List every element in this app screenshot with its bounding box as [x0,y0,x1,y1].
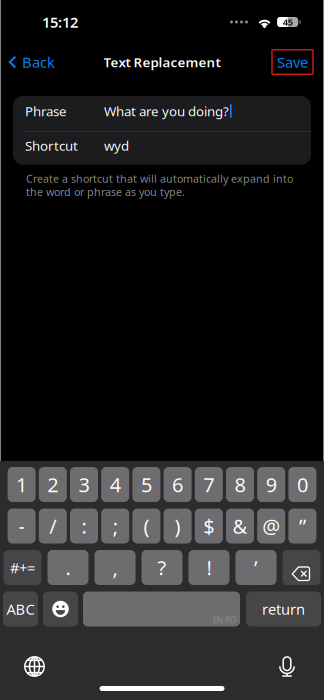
staticText: ” [299,513,306,539]
button[interactable]: 0 [288,467,316,502]
staticText: / [49,513,56,539]
staticText: Back [22,52,55,72]
staticText: #+= [10,558,35,577]
button[interactable]: , [94,550,135,585]
staticText: 9 [266,471,277,498]
button[interactable]: 1 [8,467,36,502]
button[interactable]: 7 [195,467,223,502]
staticText: ) [175,513,181,539]
staticText: return [262,599,305,619]
staticText: 7 [203,471,214,498]
button[interactable]: ABC [3,591,38,626]
button[interactable]: ’ [235,550,276,585]
button[interactable]: Save [272,50,313,74]
staticText: ; [113,513,118,539]
staticText: 1 [16,471,27,498]
button[interactable]: @ [257,508,285,543]
staticText: ! [206,554,211,581]
button[interactable]: 4 [101,467,129,502]
staticText: 4 [110,471,121,498]
button[interactable]: Next keyboard [14,650,55,683]
button[interactable]: & [226,508,254,543]
button[interactable]: 2 [39,467,67,502]
button[interactable]: / [39,508,67,543]
staticText: - [19,513,25,539]
button[interactable]: 3 [70,467,98,502]
staticText: Shortcut [25,137,78,154]
staticText: , [112,554,117,581]
staticText: 2 [47,471,58,498]
staticText: : [81,513,86,539]
staticText: 8 [234,471,245,498]
staticText: @ [262,513,280,539]
button[interactable]: space [83,591,240,626]
button[interactable]: $ [195,508,223,543]
staticText: 45 [283,16,293,28]
staticText: ABC [6,599,34,619]
button[interactable]: . [47,550,88,585]
button[interactable]: return [246,591,321,626]
staticText: $ [203,513,214,539]
button[interactable]: Dictation [267,649,307,683]
button[interactable]: 6 [164,467,192,502]
staticText: wyd [104,137,129,154]
button[interactable]: ” [288,508,316,543]
button[interactable]: ( [132,508,160,543]
staticText: ( [143,513,149,539]
button[interactable]: ) [164,508,192,543]
staticText: EN RO [213,615,236,625]
staticText: ’ [254,554,258,581]
staticText: What are you doing? [104,102,229,120]
button[interactable]: 8 [226,467,254,502]
staticText: & [232,513,247,539]
staticText: 3 [78,471,89,498]
staticText: 15:12 [42,12,78,32]
button[interactable]: Emoji [43,591,78,626]
button[interactable]: Back [0,47,55,77]
staticText: 5 [141,471,152,498]
staticText: Phrase [25,102,67,120]
button[interactable]: : [70,508,98,543]
button[interactable]: ; [101,508,129,543]
button[interactable]: 9 [257,467,285,502]
staticText: Create a shortcut that will automaticall… [26,172,293,199]
staticText: Save [277,52,308,72]
button[interactable]: #+= [3,550,41,585]
button[interactable]: - [8,508,36,543]
button[interactable]: ? [141,550,182,585]
staticText: . [65,554,70,581]
staticText: 6 [172,471,183,498]
button[interactable]: 5 [132,467,160,502]
staticText: 0 [297,471,308,498]
staticText: Text Replacement [103,53,220,71]
staticText: ? [157,554,166,581]
button[interactable]: Delete [282,550,320,585]
button[interactable]: ! [188,550,229,585]
